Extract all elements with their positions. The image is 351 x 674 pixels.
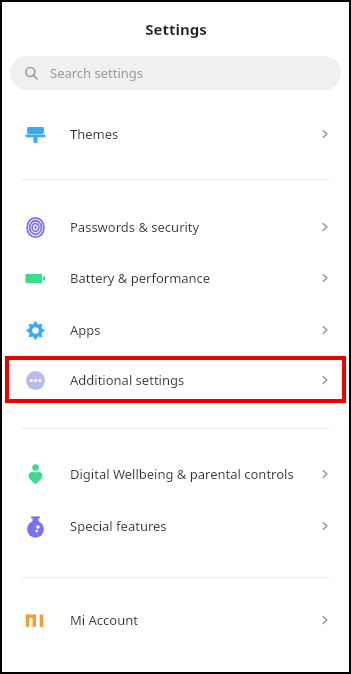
staticText: Apps (70, 321, 318, 339)
staticText: Settings (145, 19, 207, 39)
button[interactable]: Special features (2, 500, 349, 552)
staticText: Battery & performance (70, 269, 318, 287)
button[interactable]: Battery & performance (2, 252, 349, 304)
staticText: Passwords & security (70, 218, 318, 236)
button[interactable]: Search settings (10, 56, 341, 90)
button[interactable]: Mi Account (2, 594, 349, 646)
staticText: Digital Wellbeing & parental controls (70, 465, 318, 483)
staticText: Special features (70, 517, 318, 535)
staticText: Search settings (50, 64, 144, 82)
button[interactable]: Apps (2, 304, 349, 356)
button[interactable]: Additional settings (5, 356, 346, 403)
button[interactable]: Digital Wellbeing & parental controls (2, 448, 349, 500)
staticText: Themes (70, 125, 318, 143)
staticText: Additional settings (70, 371, 318, 389)
button[interactable]: Themes (2, 109, 349, 159)
staticText: Mi Account (70, 611, 318, 629)
button[interactable]: Passwords & security (2, 201, 349, 252)
